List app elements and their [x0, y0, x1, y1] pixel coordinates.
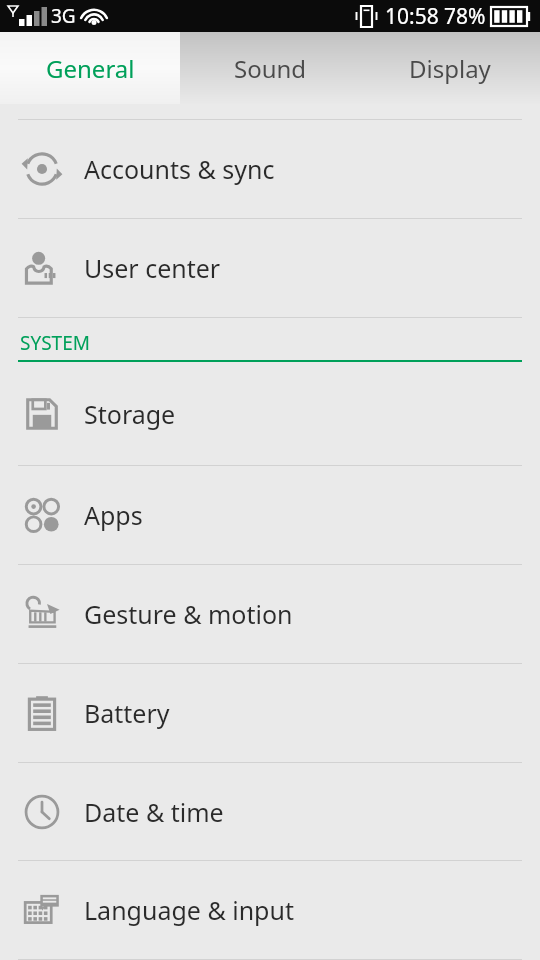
staticText: Sound	[234, 52, 307, 85]
button[interactable]: General	[0, 32, 180, 104]
staticText: SYSTEM	[20, 330, 90, 356]
button[interactable]: Storage	[0, 362, 540, 465]
staticText: 3G	[51, 3, 76, 29]
staticText: User center	[84, 251, 221, 285]
staticText: 78%	[444, 2, 486, 31]
button[interactable]: Language & input	[0, 861, 540, 959]
button[interactable]: Date & time	[0, 763, 540, 860]
button[interactable]: Sound	[180, 32, 360, 104]
button[interactable]: Battery	[0, 664, 540, 762]
button[interactable]: Gesture & motion	[0, 565, 540, 663]
staticText: Apps	[84, 498, 143, 532]
staticText: Accounts & sync	[84, 152, 275, 186]
button[interactable]: Apps	[0, 466, 540, 564]
button[interactable]: Display	[360, 32, 540, 104]
staticText: Storage	[84, 397, 176, 431]
staticText: Gesture & motion	[84, 597, 293, 631]
staticText: Language & input	[84, 893, 294, 927]
staticText: General	[46, 52, 135, 85]
staticText: Display	[409, 52, 491, 85]
staticText: Date & time	[84, 795, 224, 829]
staticText: 10:58	[385, 2, 439, 31]
button[interactable]: Accounts & sync	[0, 120, 540, 218]
staticText: Battery	[84, 696, 170, 730]
button[interactable]: User center	[0, 219, 540, 317]
